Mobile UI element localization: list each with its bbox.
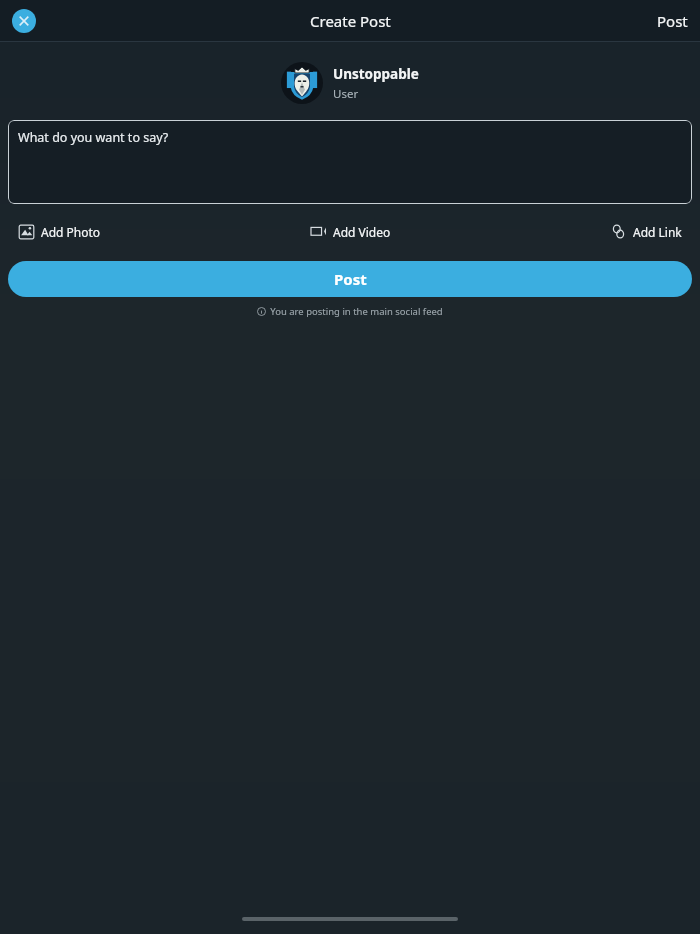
staticText: Post bbox=[657, 11, 688, 31]
staticText: You are posting in the main social feed bbox=[270, 305, 443, 318]
staticText: Add Photo bbox=[41, 224, 101, 240]
button[interactable]: Close bbox=[12, 9, 36, 33]
button[interactable]: Post bbox=[645, 3, 700, 39]
staticText: User bbox=[333, 86, 359, 102]
button[interactable]: Add Video bbox=[304, 218, 397, 245]
staticText: Add Video bbox=[333, 224, 391, 240]
staticText: What do you want to say? bbox=[18, 129, 169, 146]
button[interactable]: Add Link bbox=[604, 218, 688, 245]
staticText: Post bbox=[334, 269, 367, 289]
button[interactable]: What do you want to say? bbox=[8, 120, 692, 204]
button[interactable]: Profile avatar bbox=[281, 62, 323, 104]
staticText: Add Link bbox=[633, 224, 682, 240]
staticText: Create Post bbox=[310, 11, 391, 31]
button[interactable]: Add Photo bbox=[12, 218, 107, 245]
button[interactable]: Post bbox=[8, 261, 692, 297]
staticText: Unstoppable bbox=[333, 65, 419, 83]
